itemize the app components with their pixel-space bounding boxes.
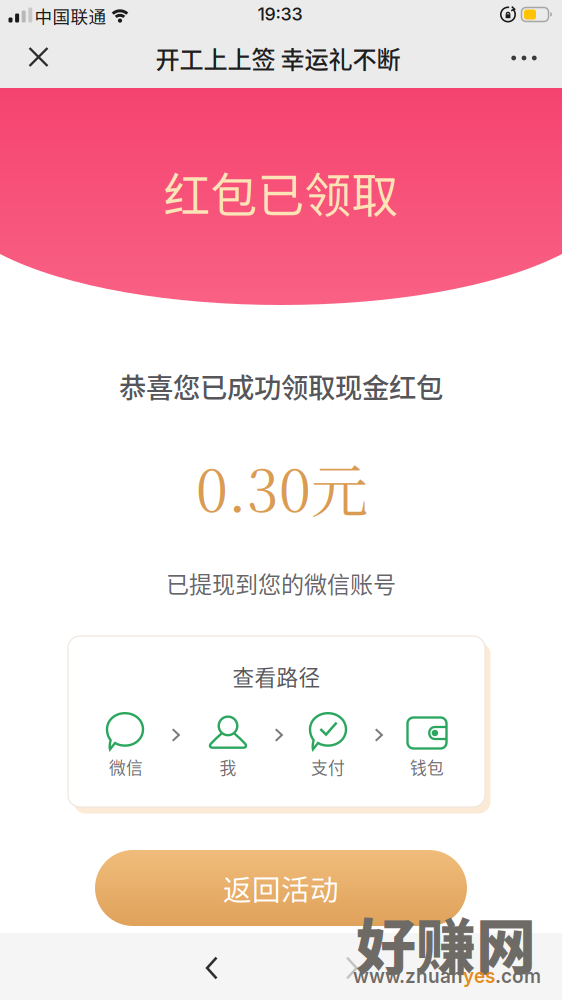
staticText: 0.30元 xyxy=(196,446,368,528)
staticText: yes xyxy=(463,964,495,987)
staticText: 好赚网 xyxy=(356,900,536,986)
staticText: 我 xyxy=(219,755,236,779)
staticText: 开工上上签 幸运礼不断 xyxy=(155,40,400,75)
staticText: 返回活动 xyxy=(223,867,339,909)
button[interactable]: Close xyxy=(17,35,60,78)
staticText: 19:33 xyxy=(257,3,302,25)
staticText: 支付 xyxy=(311,755,345,779)
staticText: 查看路径 xyxy=(232,660,320,692)
staticText: 已提现到您的微信账号 xyxy=(166,566,396,600)
button[interactable]: Back xyxy=(194,945,229,991)
staticText: 微信 xyxy=(109,755,143,779)
staticText: 钱包 xyxy=(410,755,444,779)
button[interactable]: More xyxy=(500,44,548,72)
staticText: 恭喜您已成功领取现金红包 xyxy=(119,366,443,406)
staticText: 红包已领取 xyxy=(163,158,398,226)
button[interactable]: 返回活动 xyxy=(95,850,467,926)
staticText: .com xyxy=(495,964,541,987)
staticText: 中国联通 xyxy=(34,3,106,28)
staticText: www.zhuan xyxy=(353,964,463,987)
button[interactable]: Forward xyxy=(334,945,369,991)
